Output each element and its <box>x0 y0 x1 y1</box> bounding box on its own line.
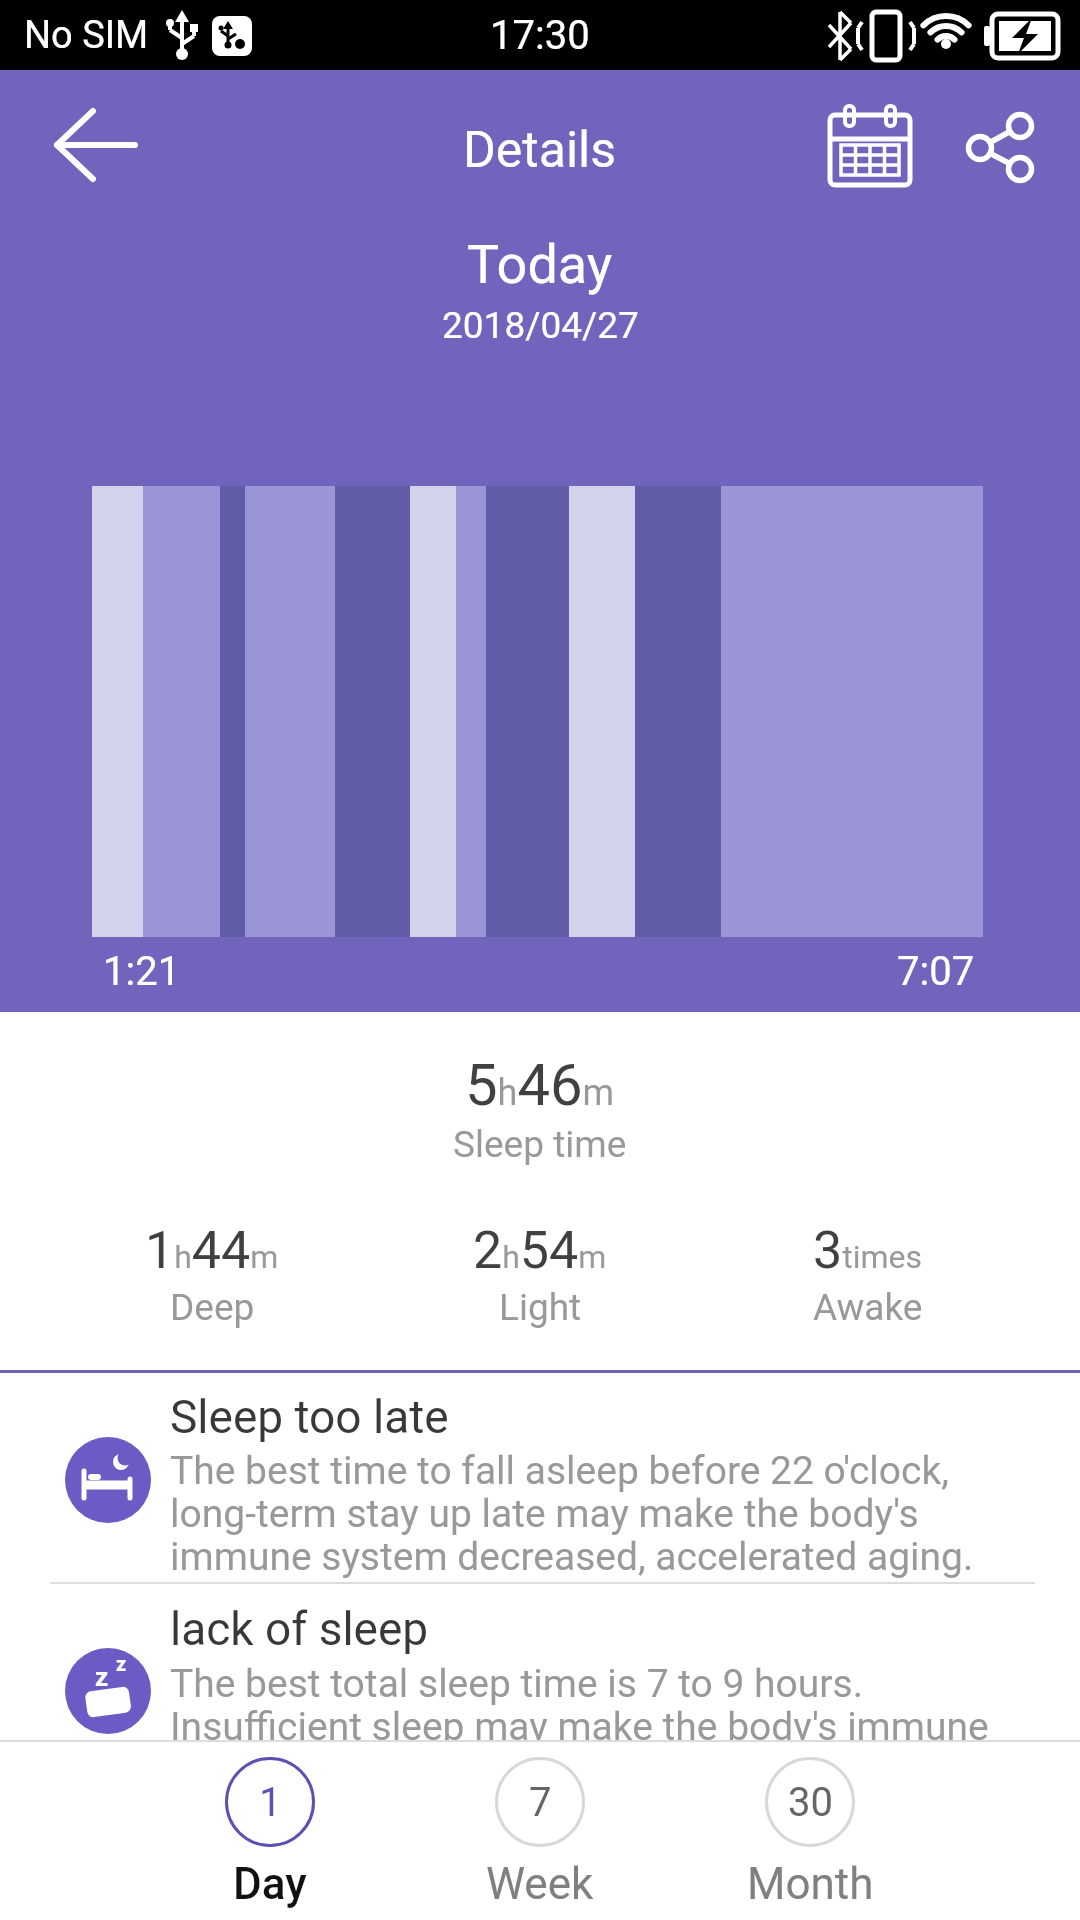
button[interactable] <box>820 97 920 197</box>
button[interactable]: 30 <box>720 1750 900 1910</box>
staticText: Sleep time <box>453 1123 627 1166</box>
button[interactable] <box>950 100 1050 190</box>
staticText: Awake <box>813 1286 923 1329</box>
staticText: 1h44m <box>145 1220 279 1281</box>
button[interactable]: 7 <box>450 1750 630 1910</box>
staticText: 2h54m <box>473 1220 607 1281</box>
staticText: The best total sleep time is 7 to 9 hour… <box>170 1661 989 1750</box>
staticText: lack of sleep <box>170 1602 429 1656</box>
staticText: Week <box>486 1858 594 1910</box>
button[interactable] <box>30 100 170 200</box>
staticText: 2018/04/27 <box>442 304 639 347</box>
staticText: 1 <box>259 1779 282 1826</box>
staticText: Deep <box>170 1286 255 1329</box>
staticText: z <box>116 1652 127 1675</box>
staticText: Sleep too late <box>170 1390 449 1444</box>
staticText: z <box>95 1662 109 1692</box>
staticText: Details <box>463 121 617 180</box>
staticText: 17:30 <box>490 12 590 59</box>
staticText: No SIM <box>24 13 149 58</box>
staticText: 30 <box>788 1779 833 1826</box>
staticText: 7 <box>529 1779 552 1826</box>
staticText: Today <box>467 233 613 296</box>
staticText: 1:21 <box>103 948 181 995</box>
button[interactable]: 1 <box>180 1750 360 1910</box>
staticText: 7:07 <box>897 948 975 995</box>
staticText: Month <box>747 1858 874 1910</box>
staticText: Day <box>233 1858 307 1910</box>
staticText: The best time to fall asleep before 22 o… <box>170 1448 974 1580</box>
staticText: Light <box>499 1286 582 1329</box>
staticText: 5h46m <box>465 1051 615 1119</box>
staticText: 3times <box>813 1220 923 1281</box>
